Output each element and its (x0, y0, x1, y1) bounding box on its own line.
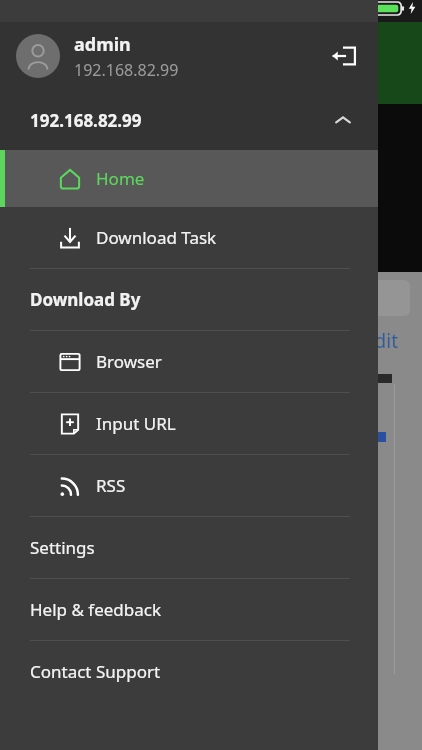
staticText: Edit (364, 328, 399, 354)
button[interactable]: Download Task (0, 207, 378, 268)
button[interactable]: Home (0, 150, 378, 207)
button[interactable]: Log out (324, 36, 364, 76)
button[interactable]: Settings (0, 517, 378, 578)
button[interactable]: Help & feedback (0, 579, 378, 640)
staticText: Download By (30, 288, 141, 311)
button[interactable]: admin (0, 22, 378, 90)
staticText: Input URL (96, 412, 176, 435)
staticText: RSS (96, 474, 126, 497)
button[interactable]: Input URL (0, 393, 378, 454)
button[interactable]: Contact Support (0, 641, 378, 702)
staticText: Settings (30, 536, 95, 559)
staticText: Help & feedback (30, 598, 162, 621)
staticText: admin (74, 32, 131, 57)
staticText: Browser (96, 350, 162, 373)
staticText: 192.168.82.99 (74, 59, 179, 81)
button[interactable]: Browser (0, 331, 378, 392)
staticText: Home (96, 167, 145, 190)
button[interactable]: RSS (0, 455, 378, 516)
button[interactable]: 192.168.82.99 (0, 90, 378, 150)
staticText: Download Task (96, 226, 217, 249)
staticText: 192.168.82.99 (30, 109, 142, 132)
staticText: Contact Support (30, 660, 161, 683)
